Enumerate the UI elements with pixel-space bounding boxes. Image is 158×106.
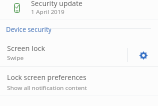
staticText: Swipe: [7, 54, 24, 62]
staticText: Security update: [31, 0, 83, 9]
staticText: Device security: [6, 25, 52, 34]
button[interactable]: Security update: [0, 0, 158, 19]
staticText: Show all notification content: [7, 84, 87, 92]
staticText: 1 April 2019: [31, 8, 65, 16]
button[interactable]: Lock screen preferences: [0, 68, 158, 95]
button[interactable]: Screen lock settings: [128, 38, 158, 65]
button[interactable]: Screen lock: [0, 38, 127, 65]
staticText: Screen lock: [7, 43, 46, 53]
staticText: Lock screen preferences: [7, 73, 87, 83]
